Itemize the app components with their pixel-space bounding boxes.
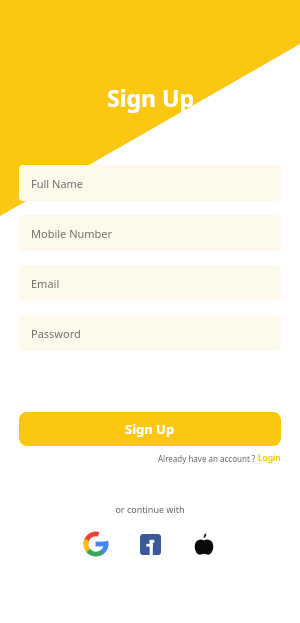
staticText: Password (31, 326, 81, 341)
button[interactable]: Login (258, 452, 281, 464)
staticText: Login (258, 452, 281, 464)
button[interactable]: Sign Up (19, 412, 281, 446)
button[interactable]: Mobile Number (19, 215, 281, 251)
staticText: Email (31, 276, 60, 291)
button[interactable]: Email (19, 265, 281, 301)
staticText: Full Name (31, 176, 84, 191)
button[interactable]: Continue with Apple (191, 531, 217, 557)
staticText: Sign Up (125, 420, 175, 438)
staticText: Sign Up (107, 82, 194, 113)
staticText: Already have an account ? (158, 453, 258, 464)
button[interactable]: Password (19, 315, 281, 351)
button[interactable]: Full Name (19, 165, 281, 201)
staticText: or continue with (115, 503, 185, 515)
button[interactable]: Continue with Google (83, 531, 109, 557)
staticText: Mobile Number (31, 226, 113, 241)
button[interactable]: Continue with Facebook (137, 531, 163, 557)
